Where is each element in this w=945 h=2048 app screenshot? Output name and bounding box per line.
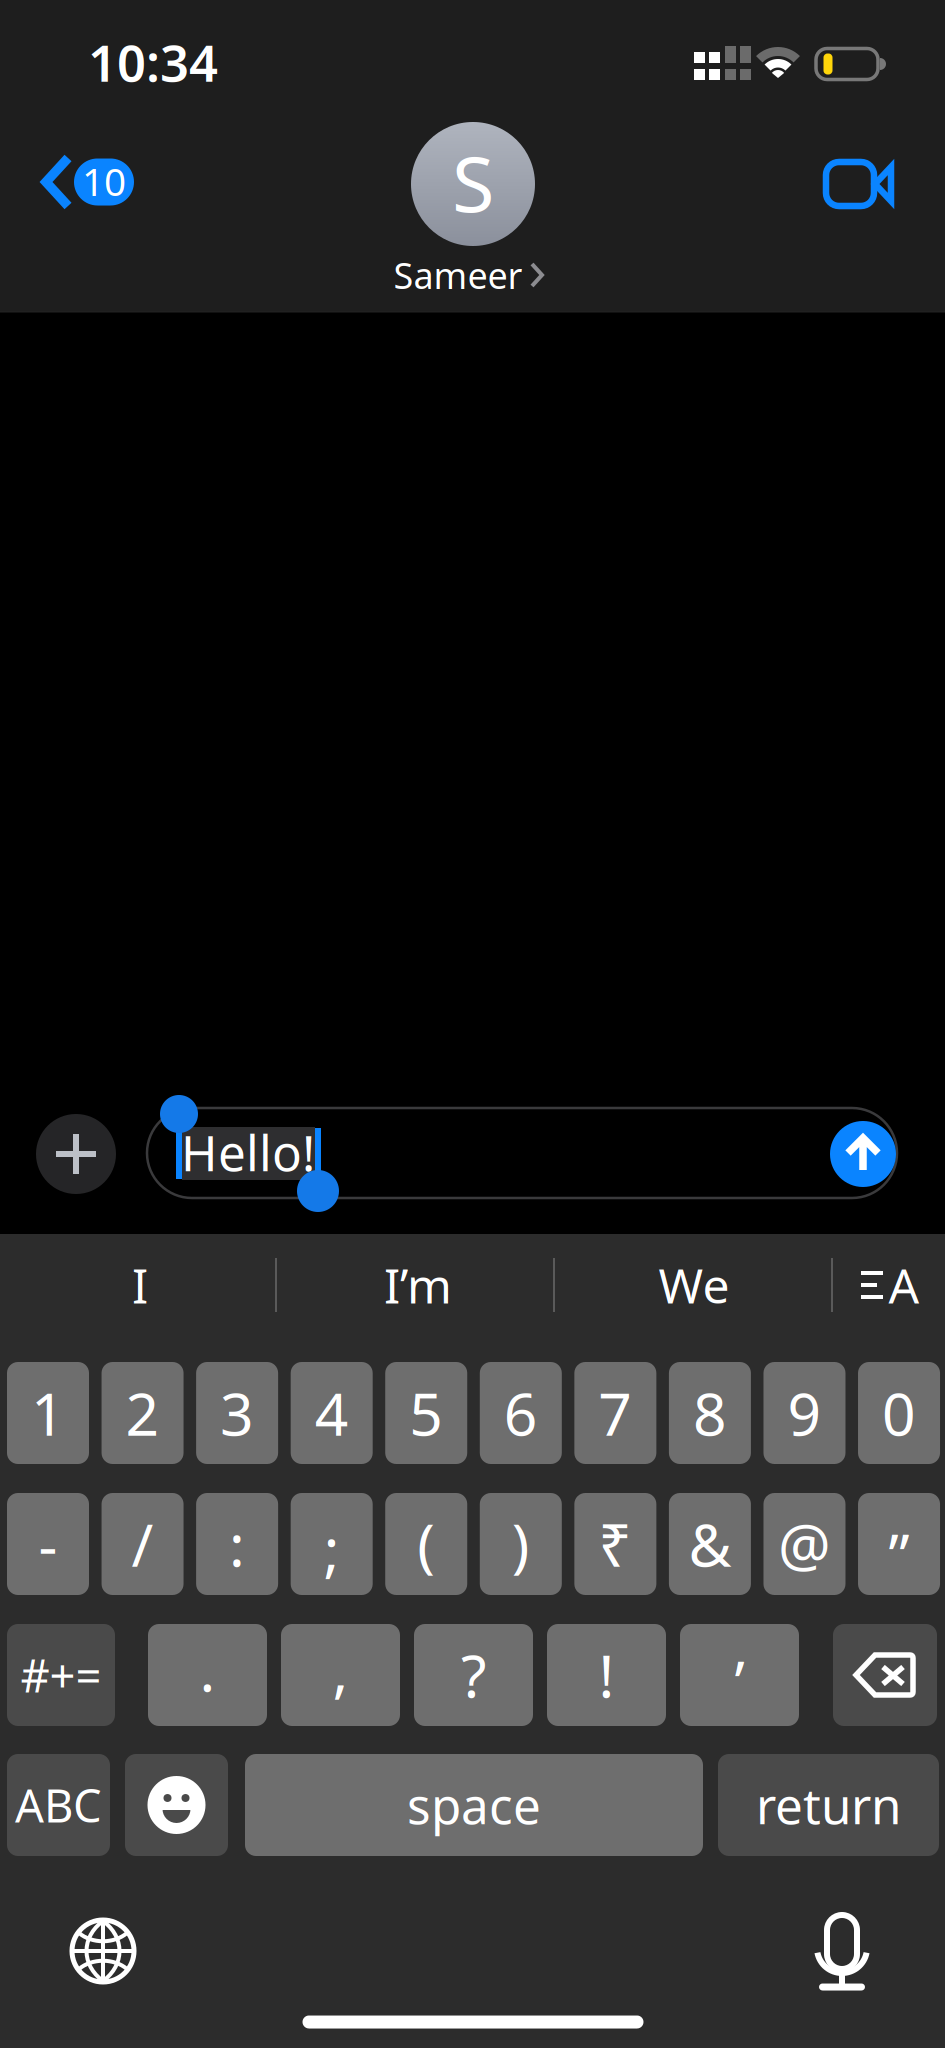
button[interactable]: Next keyboard [70,1918,136,1984]
staticText: , [332,1630,348,1708]
staticText: ) [512,1505,530,1583]
button[interactable]: ( [385,1493,467,1595]
button[interactable]: Delete [833,1624,937,1726]
button[interactable]: 8 [669,1362,751,1464]
staticText: 8 [693,1374,727,1452]
button[interactable]: 5 [385,1362,467,1464]
button[interactable]: 6 [480,1362,562,1464]
button[interactable]: I [108,1258,172,1312]
button[interactable]: Add attachment [31,1109,121,1199]
button[interactable]: I’m [362,1258,474,1312]
staticText: 6 [504,1374,538,1452]
button[interactable]: Dictation [808,1912,876,1990]
button[interactable]: ” [858,1493,940,1595]
button[interactable]: / [102,1493,184,1595]
button[interactable]: , [281,1624,400,1726]
button[interactable]: #+= [7,1624,115,1726]
staticText: . [199,1630,215,1708]
button[interactable]: 2 [102,1362,184,1464]
staticText: We [658,1253,729,1317]
button[interactable]: ₹ [574,1493,656,1595]
staticText: Sameer [393,251,522,299]
staticText: Hello! [181,1119,315,1185]
staticText: 10 [82,155,126,207]
button[interactable]: ! [547,1624,666,1726]
button[interactable]: FaceTime [814,144,914,224]
button[interactable]: 3 [196,1362,278,1464]
staticText: 3 [220,1374,254,1452]
staticText: S [452,131,494,233]
staticText: ! [598,1636,614,1714]
button[interactable]: ’ [680,1624,799,1726]
staticText: 7 [598,1374,632,1452]
button[interactable]: 10 [18,143,168,221]
button[interactable]: 7 [574,1362,656,1464]
staticText: 5 [409,1374,443,1452]
button[interactable]: return [718,1754,939,1856]
staticText: 9 [787,1374,821,1452]
button[interactable]: - [7,1493,89,1595]
staticText: 2 [126,1374,160,1452]
staticText: 10:34 [88,28,218,96]
staticText: @ [778,1505,831,1583]
button[interactable]: ABC [7,1754,110,1856]
staticText: ’ [734,1642,744,1720]
button[interactable]: @ [763,1493,845,1595]
button[interactable]: Send [823,1114,903,1194]
staticText: I’m [384,1253,452,1317]
button[interactable]: : [196,1493,278,1595]
button[interactable]: Text formatting [856,1258,926,1312]
staticText: I [132,1253,148,1317]
button[interactable]: Emoji [125,1754,228,1856]
staticText: 1 [31,1374,65,1452]
staticText: space [407,1772,541,1838]
button[interactable]: S [348,117,598,307]
staticText: ” [888,1515,909,1593]
button[interactable]: 9 [763,1362,845,1464]
button[interactable]: & [669,1493,751,1595]
staticText: #+= [20,1645,101,1705]
button[interactable]: ; [291,1493,373,1595]
staticText: A [888,1253,919,1317]
staticText: return [756,1772,901,1838]
staticText: ; [324,1509,340,1587]
staticText: 4 [315,1374,349,1452]
staticText: ( [417,1505,435,1583]
staticText: 0 [882,1374,916,1452]
button[interactable]: 1 [7,1362,89,1464]
staticText: & [688,1505,731,1583]
button[interactable]: ) [480,1493,562,1595]
staticText: / [132,1505,154,1583]
staticText: ABC [15,1775,102,1835]
button[interactable]: 4 [291,1362,373,1464]
staticText: - [38,1505,57,1583]
button[interactable]: We [638,1258,750,1312]
staticText: : [229,1505,245,1583]
button[interactable]: . [148,1624,267,1726]
button[interactable]: 0 [858,1362,940,1464]
button[interactable]: space [245,1754,703,1856]
staticText: ₹ [598,1505,632,1583]
staticText: ? [461,1636,486,1714]
button[interactable]: ? [414,1624,533,1726]
